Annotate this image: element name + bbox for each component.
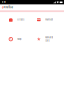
- staticText: card: [45, 39, 49, 42]
- button[interactable]: Back: [2, 5, 13, 10]
- staticText: Rewards: [45, 36, 53, 39]
- button[interactable]: Payment: [32, 18, 60, 22]
- button[interactable]: Shop: [4, 37, 32, 41]
- staticText: Orders: [17, 18, 24, 21]
- staticText: 9:41: [2, 1, 6, 3]
- button[interactable]: Rewards: [32, 36, 60, 42]
- button[interactable]: Orders: [4, 18, 32, 22]
- staticText: Shop: [17, 38, 21, 40]
- staticText: Payment: [45, 18, 53, 21]
- staticText: Profile: [4, 6, 13, 9]
